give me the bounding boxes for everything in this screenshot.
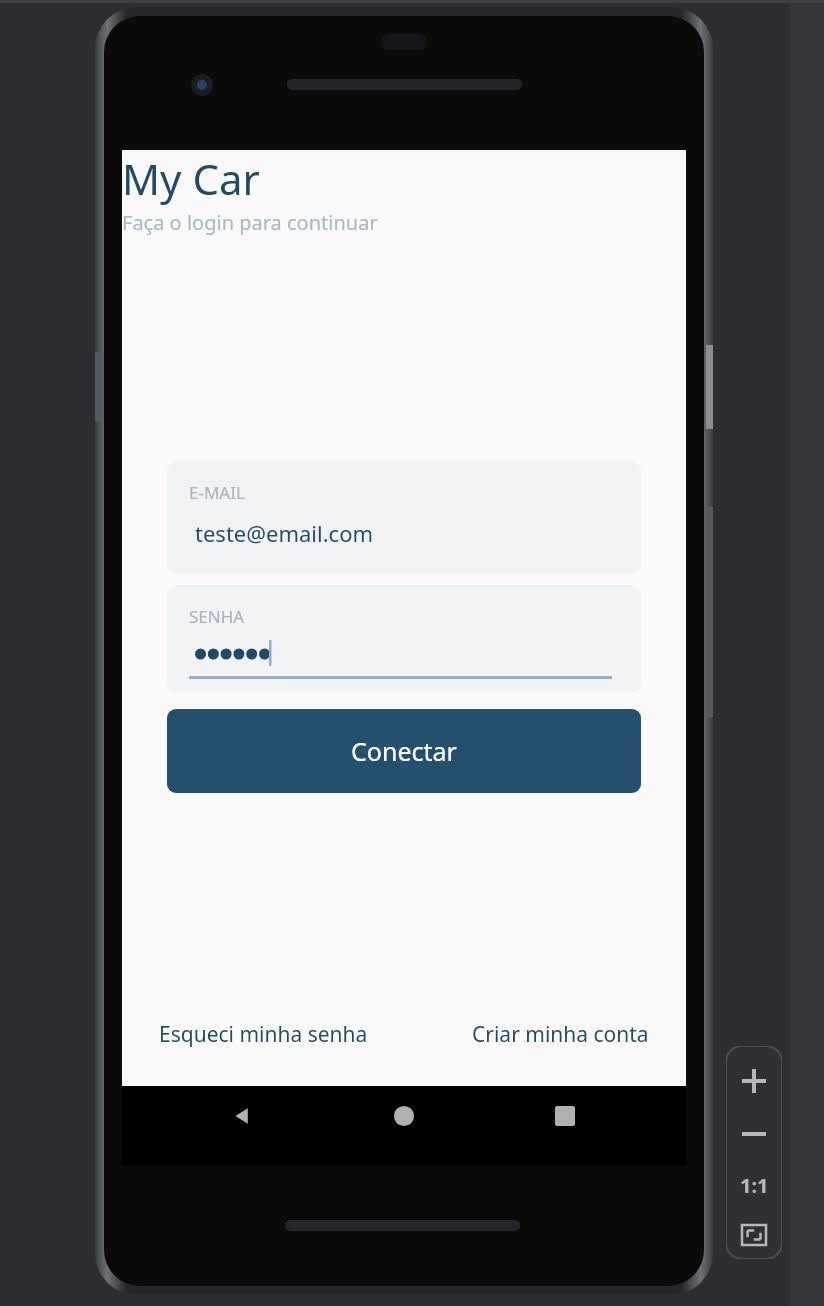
staticText: teste@email.com bbox=[195, 518, 374, 548]
button[interactable]: Fit to screen bbox=[733, 1214, 775, 1256]
staticText: My Car bbox=[122, 150, 260, 207]
button[interactable]: Criar minha conta bbox=[468, 1016, 653, 1053]
button[interactable]: Zoom out bbox=[733, 1113, 775, 1155]
button[interactable]: Recent apps bbox=[525, 1086, 605, 1146]
button[interactable]: Conectar bbox=[167, 709, 641, 793]
staticText: 1:1 bbox=[740, 1172, 769, 1199]
button[interactable]: SENHA bbox=[167, 585, 641, 693]
button[interactable]: Back bbox=[203, 1086, 283, 1146]
button[interactable]: Home bbox=[364, 1086, 444, 1146]
staticText: Esqueci minha senha bbox=[159, 1020, 368, 1049]
staticText: Faça o login para continuar bbox=[122, 209, 378, 236]
staticText: SENHA bbox=[189, 605, 245, 628]
button[interactable]: 1:1 bbox=[733, 1164, 775, 1206]
button[interactable]: E-MAIL bbox=[167, 461, 641, 574]
staticText: Criar minha conta bbox=[472, 1020, 649, 1049]
staticText: Conectar bbox=[351, 734, 457, 768]
button[interactable]: Zoom in bbox=[733, 1060, 775, 1102]
staticText: E-MAIL bbox=[189, 481, 245, 504]
button[interactable]: Esqueci minha senha bbox=[155, 1016, 372, 1053]
